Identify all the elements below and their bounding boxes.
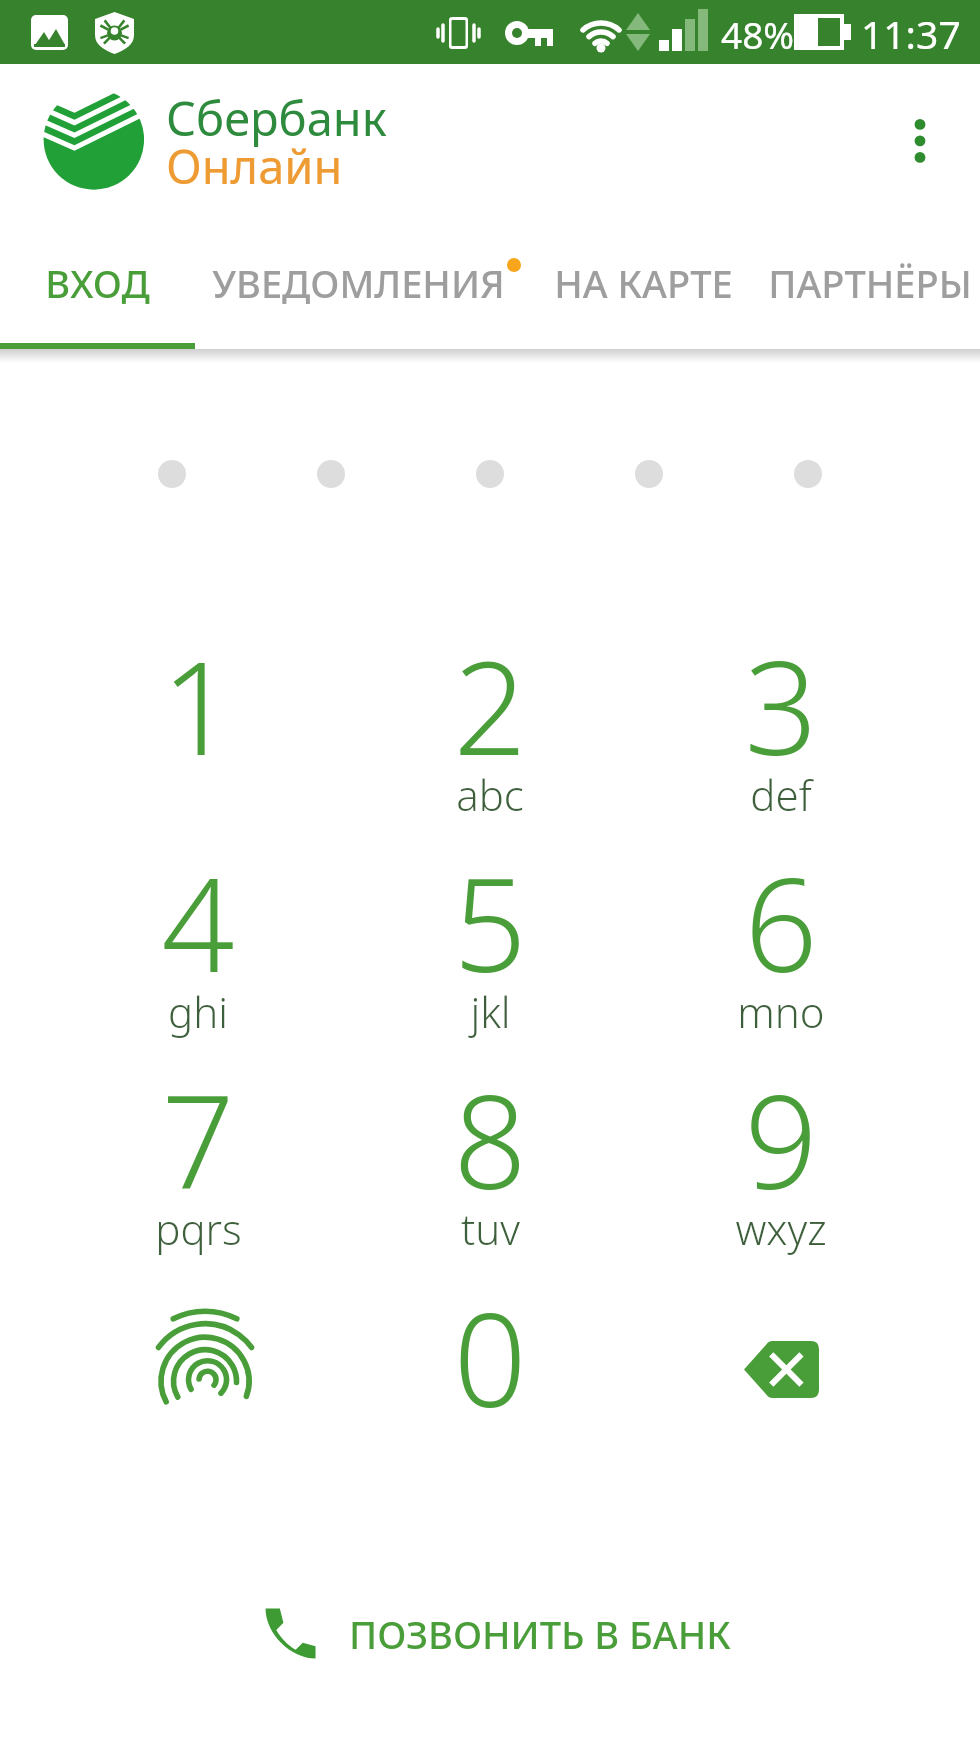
staticText: 7 xyxy=(161,1052,235,1226)
button[interactable]: 4 xyxy=(78,825,318,1025)
button[interactable]: 7 xyxy=(78,1042,318,1242)
staticText: 8 xyxy=(453,1052,527,1226)
staticText: Онлайн xyxy=(166,134,343,198)
staticText: ВХОД xyxy=(45,257,150,309)
button[interactable]: ПАРТНЁРЫ xyxy=(759,212,980,349)
staticText: 48% xyxy=(721,9,795,59)
staticText: 1 xyxy=(161,618,235,792)
button[interactable]: 6 xyxy=(661,825,901,1025)
staticText: УВЕДОМЛЕНИЯ xyxy=(212,257,505,309)
staticText: pqrs xyxy=(155,1200,242,1257)
button[interactable]: ПОЗВОНИТЬ В БАНК xyxy=(225,1578,755,1690)
button[interactable]: 0 xyxy=(370,1260,610,1460)
staticText: 0 xyxy=(453,1270,527,1444)
staticText: 5 xyxy=(453,835,527,1009)
button[interactable]: УВЕДОМЛЕНИЯ xyxy=(188,212,529,349)
button[interactable]: 5 xyxy=(370,825,610,1025)
button[interactable]: 3 xyxy=(661,608,901,808)
button[interactable]: More options xyxy=(878,64,962,212)
staticText: 11:37 xyxy=(861,7,961,60)
staticText: ПАРТНЁРЫ xyxy=(768,257,972,309)
button[interactable]: 2 xyxy=(370,608,610,808)
staticText: 3 xyxy=(744,618,818,792)
button[interactable]: НА КАРТЕ xyxy=(515,212,771,349)
staticText: abc xyxy=(456,766,524,823)
staticText: tuv xyxy=(461,1200,520,1257)
staticText: 6 xyxy=(744,835,818,1009)
staticText: wxyz xyxy=(735,1200,827,1257)
button[interactable]: Fingerprint login xyxy=(78,1255,318,1455)
staticText: 9 xyxy=(744,1052,818,1226)
button[interactable]: Backspace xyxy=(661,1260,901,1460)
staticText: НА КАРТЕ xyxy=(554,257,733,309)
staticText: mno xyxy=(737,983,825,1040)
staticText: Сбербанк xyxy=(166,86,387,150)
button[interactable]: ВХОД xyxy=(0,212,195,349)
button[interactable]: 1 xyxy=(78,608,318,808)
staticText: def xyxy=(750,766,812,823)
staticText: 2 xyxy=(453,618,527,792)
staticText: jkl xyxy=(470,983,511,1040)
staticText: ПОЗВОНИТЬ В БАНК xyxy=(349,1608,731,1660)
staticText: ghi xyxy=(168,983,228,1040)
staticText: 4 xyxy=(161,835,235,1009)
button[interactable]: 9 xyxy=(661,1042,901,1242)
button[interactable]: 8 xyxy=(370,1042,610,1242)
